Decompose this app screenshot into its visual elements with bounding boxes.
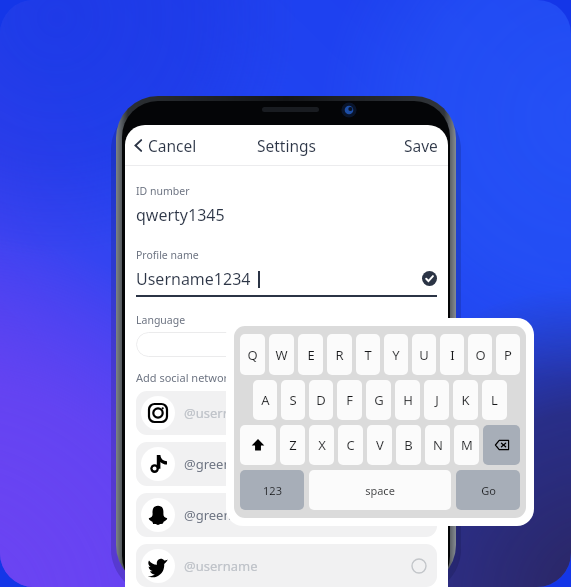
staticText: Q (247, 346, 258, 364)
staticText: Language (136, 313, 186, 327)
staticText: W (275, 346, 288, 364)
staticText: Go (481, 483, 496, 498)
staticText: T (364, 346, 372, 364)
staticText: E (307, 346, 315, 364)
staticText: A (261, 391, 270, 409)
staticText: F (346, 391, 353, 409)
staticText: N (433, 436, 443, 454)
button[interactable]: C (338, 425, 363, 465)
button[interactable]: F (337, 380, 362, 420)
button[interactable]: J (424, 380, 449, 420)
button[interactable]: space (309, 470, 451, 510)
button[interactable]: Save (401, 132, 441, 159)
staticText: B (404, 436, 413, 454)
button[interactable]: @greenmoon (136, 442, 437, 486)
staticText: C (346, 436, 355, 454)
staticText: qwerty1345 (136, 204, 225, 226)
button[interactable]: H (395, 380, 420, 420)
button[interactable]: K (453, 380, 478, 420)
staticText: @username (184, 557, 258, 575)
staticText: K (461, 391, 470, 409)
button[interactable]: I (440, 334, 464, 375)
staticText: G (374, 391, 384, 409)
staticText: Add social networks (136, 370, 240, 385)
other: Verified (422, 271, 437, 286)
staticText: J (435, 391, 439, 409)
button[interactable]: S (281, 380, 305, 420)
button[interactable]: B (396, 425, 421, 465)
button[interactable]: T (356, 334, 380, 375)
button[interactable]: D (309, 380, 333, 420)
button[interactable]: Shift (240, 425, 276, 465)
button[interactable]: R (327, 334, 352, 375)
staticText: L (491, 391, 498, 409)
other: Select (411, 558, 427, 574)
staticText: @greenmoon (184, 455, 268, 473)
button[interactable]: O (468, 334, 492, 375)
button[interactable]: Z (280, 425, 305, 465)
button[interactable]: P (496, 334, 520, 375)
staticText: ID number (136, 184, 190, 198)
staticText: English (264, 336, 309, 354)
button[interactable]: X (309, 425, 334, 465)
button[interactable]: Backspace (483, 425, 520, 465)
button[interactable]: Go (456, 470, 520, 510)
staticText: V (376, 436, 384, 454)
button[interactable]: N (425, 425, 450, 465)
button[interactable]: English (136, 332, 437, 357)
button[interactable]: Y (384, 334, 408, 375)
button[interactable]: 123 (240, 470, 304, 510)
button[interactable]: U (412, 334, 436, 375)
staticText: Settings (257, 135, 316, 156)
button[interactable]: G (366, 380, 391, 420)
staticText: 123 (263, 483, 282, 498)
button[interactable]: L (482, 380, 507, 420)
button[interactable]: W (269, 334, 294, 375)
staticText: Z (289, 436, 297, 454)
staticText: U (419, 346, 429, 364)
staticText: M (461, 436, 473, 454)
button[interactable]: Q (240, 334, 265, 375)
button[interactable]: M (454, 425, 479, 465)
staticText: Profile name (136, 248, 199, 262)
button[interactable]: V (367, 425, 392, 465)
button[interactable]: Cancel (131, 132, 200, 159)
staticText: @greenmoon (184, 506, 268, 524)
button[interactable]: @greenmoon (136, 493, 437, 537)
button[interactable]: @username (136, 544, 437, 587)
staticText: Username1234 (136, 268, 251, 290)
button[interactable]: E (298, 334, 323, 375)
staticText: space (365, 483, 395, 498)
staticText: X (318, 436, 326, 454)
staticText: @username (184, 404, 258, 422)
staticText: D (316, 391, 326, 409)
staticText: P (504, 346, 512, 364)
button[interactable]: A (253, 380, 277, 420)
staticText: O (475, 346, 486, 364)
staticText: R (335, 346, 344, 364)
staticText: H (403, 391, 413, 409)
staticText: Y (392, 346, 400, 364)
staticText: S (289, 391, 297, 409)
button[interactable]: @username (136, 391, 437, 435)
staticText: I (450, 346, 455, 364)
staticText: Cancel (148, 135, 197, 156)
